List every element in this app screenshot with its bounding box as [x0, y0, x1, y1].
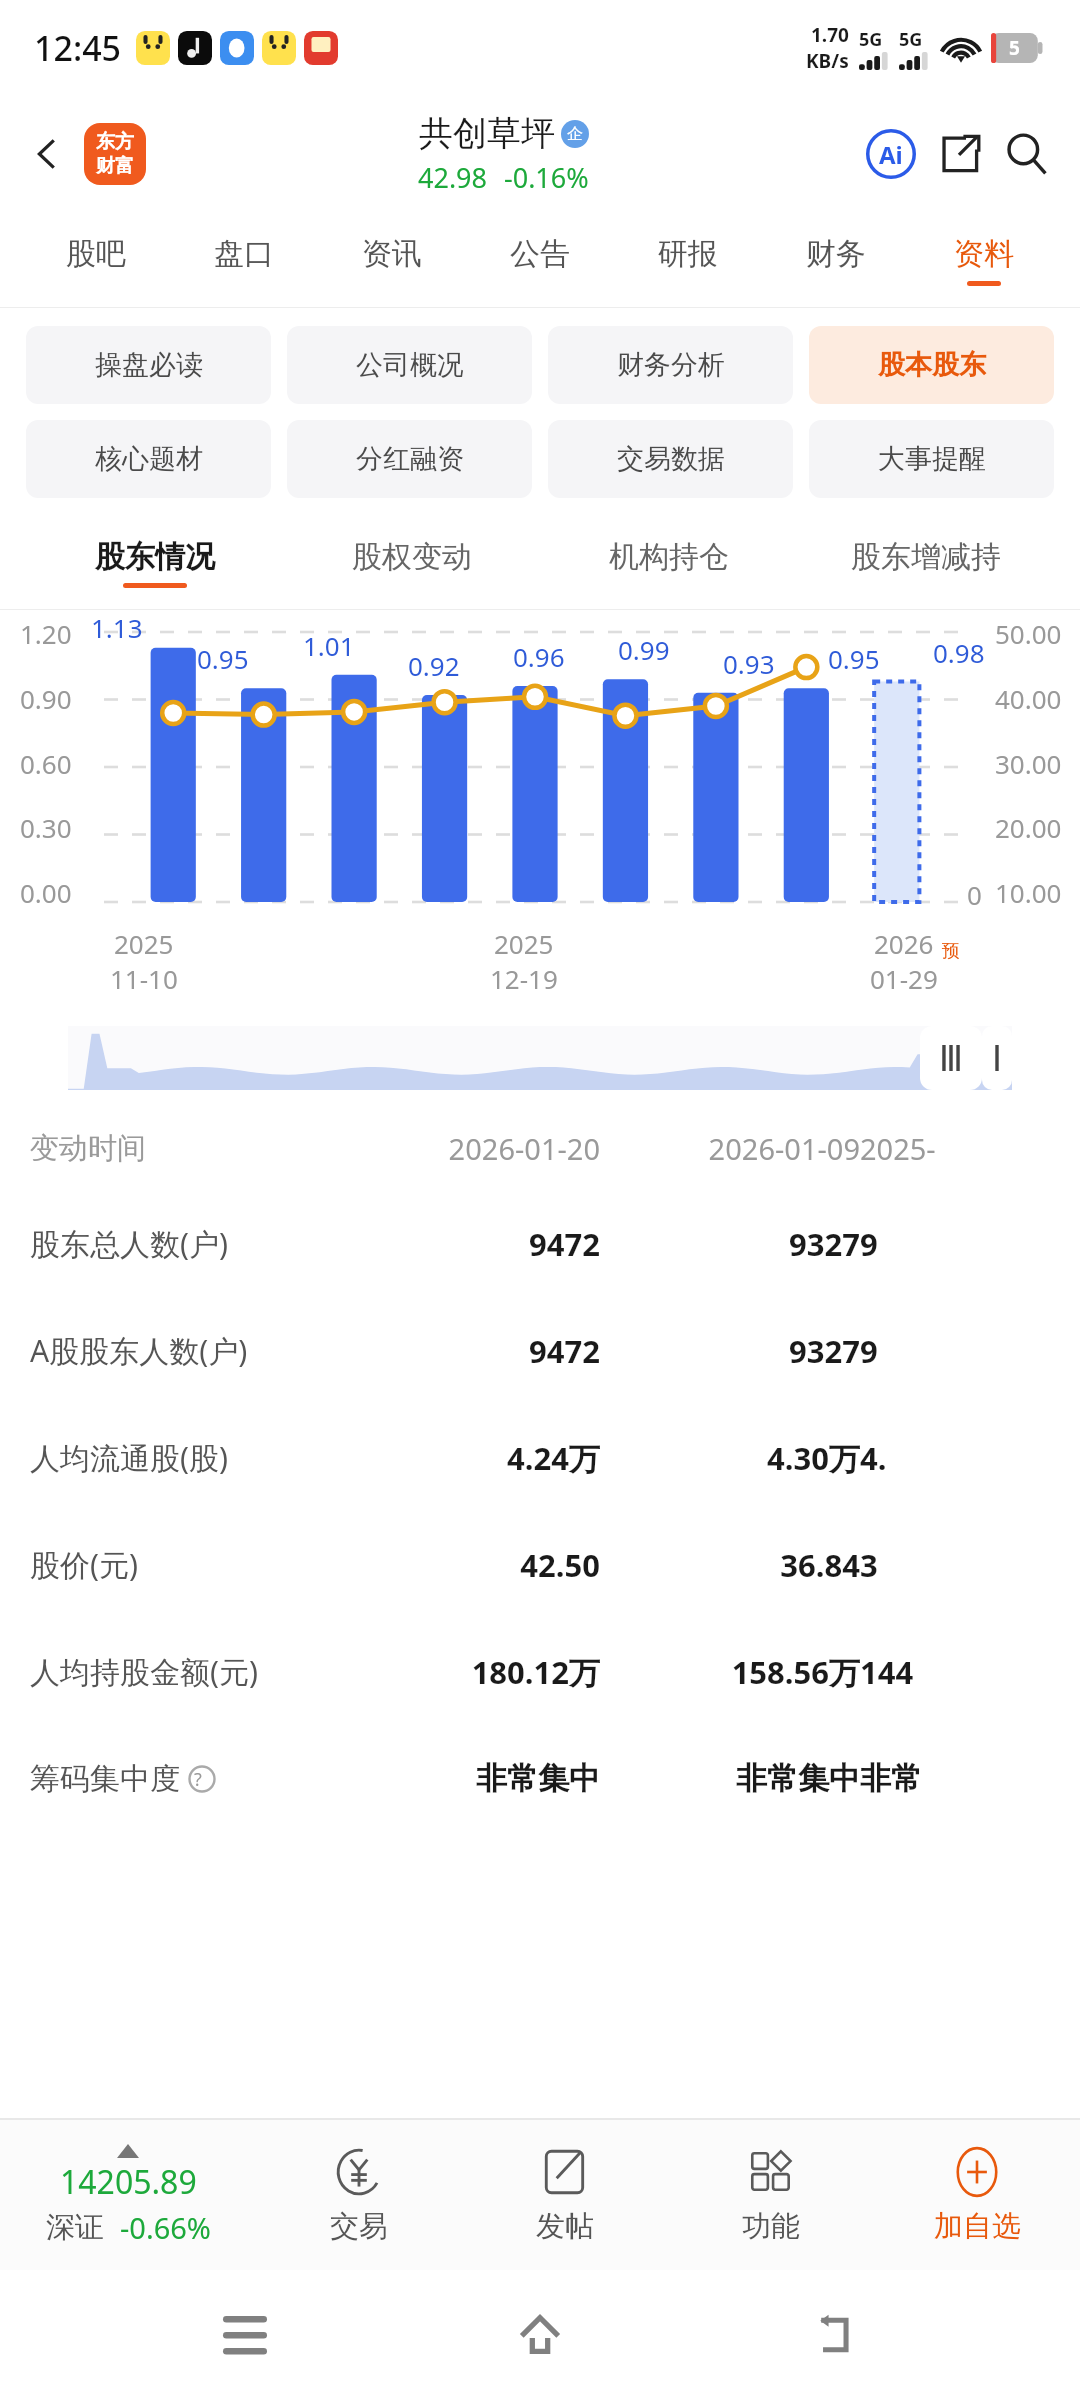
button[interactable]: 盘口 [170, 212, 318, 308]
staticText: Ai [879, 138, 903, 171]
staticText: 9 [860, 1330, 1060, 1372]
button[interactable]: 股吧 [22, 212, 170, 308]
button[interactable]: 14205.89 [0, 2120, 256, 2270]
staticText: 2025 [114, 926, 174, 961]
staticText: -0.66% [120, 2208, 211, 2247]
staticText: 2026-01-09 [600, 1129, 860, 1168]
button[interactable]: 功能 [668, 2120, 874, 2270]
staticText: 42.50 [330, 1544, 600, 1586]
staticText: 人均流通股(股) [30, 1437, 228, 1478]
staticText: 加自选 [934, 2208, 1021, 2245]
button[interactable]: 交易数据 [548, 420, 793, 498]
button[interactable]: 核心题材 [26, 420, 271, 498]
staticText: 分红融资 [356, 442, 464, 476]
button[interactable]: 主页 [490, 2285, 590, 2385]
staticText: 42.98 [418, 159, 488, 196]
button[interactable]: 人均流通股(股) [30, 1404, 1080, 1511]
button[interactable]: 财务分析 [548, 326, 793, 404]
staticText: 1.13 [91, 610, 143, 645]
staticText: 10.00 [995, 875, 1062, 910]
staticText: 4.24万 [330, 1437, 600, 1479]
button[interactable]: 返回 [785, 2285, 885, 2385]
button[interactable]: 股本股东 [809, 326, 1054, 404]
staticText: 交易 [330, 2208, 388, 2245]
staticText: 3 [860, 1544, 1060, 1586]
staticText: 180.12万 [330, 1651, 600, 1693]
staticText: 操盘必读 [95, 348, 203, 382]
button[interactable]: 筹码集中度 [30, 1725, 1080, 1832]
button[interactable]: 人均持股金额(元) [30, 1618, 1080, 1725]
button[interactable]: 研报 [614, 212, 762, 308]
button[interactable]: 公告 [466, 212, 614, 308]
button[interactable]: 最近任务 [195, 2285, 295, 2385]
button[interactable]: 股权变动 [283, 516, 540, 610]
staticText: 盘口 [214, 235, 274, 273]
button[interactable]: 分红融资 [287, 420, 532, 498]
staticText: 0.95 [197, 641, 249, 676]
button[interactable]: 时间范围选择 [68, 1026, 1012, 1090]
button[interactable]: 搜索 [998, 125, 1056, 183]
staticText: 0.99 [618, 632, 670, 667]
staticText: 0.98 [933, 635, 985, 670]
button[interactable]: 机构持仓 [540, 516, 797, 610]
staticText: 12:45 [34, 25, 122, 71]
staticText: 2026-01-20 [330, 1129, 600, 1168]
staticText: 资讯 [362, 235, 422, 273]
staticText: 核心题材 [95, 442, 203, 476]
button[interactable]: A股股东人数(户) [30, 1297, 1080, 1404]
staticText: 9327 [600, 1330, 860, 1372]
button[interactable]: 大事提醒 [809, 420, 1054, 498]
staticText: 50.00 [995, 616, 1062, 651]
staticText: 9472 [330, 1330, 600, 1372]
staticText: 发帖 [536, 2208, 594, 2245]
staticText: 财务分析 [617, 348, 725, 382]
button[interactable]: 股东总人数(户) [30, 1190, 1080, 1297]
staticText: 0.93 [723, 646, 775, 681]
staticText: 36.84 [600, 1544, 860, 1586]
staticText: KB/s [806, 48, 849, 74]
staticText: 变动时间 [30, 1130, 330, 1167]
button[interactable]: 公司概况 [287, 326, 532, 404]
button[interactable]: 操盘必读 [26, 326, 271, 404]
staticText: 20.00 [995, 810, 1062, 845]
staticText: 资料 [954, 235, 1014, 273]
staticText: 功能 [742, 2208, 800, 2245]
staticText: 预 [942, 940, 960, 963]
staticText: 2025- [860, 1129, 1060, 1168]
staticText: 30.00 [995, 746, 1062, 781]
staticText: 财务 [806, 235, 866, 273]
button[interactable]: 股价(元) [30, 1511, 1080, 1618]
staticText: 股东总人数(户) [30, 1223, 228, 1264]
staticText: 0.92 [408, 648, 460, 683]
staticText: 非常集中 [330, 1759, 600, 1798]
staticText: 股价(元) [30, 1544, 138, 1585]
button[interactable]: 股东增减持 [797, 516, 1054, 610]
button[interactable]: 分享 [930, 125, 988, 183]
staticText: 40.00 [995, 681, 1062, 716]
staticText: 0.90 [20, 681, 72, 716]
staticText: 财富 [96, 154, 134, 178]
button[interactable]: 交易 [256, 2120, 462, 2270]
button[interactable]: 返回 [20, 126, 76, 182]
staticText: 5G [899, 27, 923, 52]
staticText: 大事提醒 [878, 442, 986, 476]
staticText: 2025 [494, 926, 554, 961]
button[interactable]: 加自选 [874, 2120, 1080, 2270]
button[interactable]: 财务 [762, 212, 910, 308]
staticText: 股吧 [66, 235, 126, 273]
button[interactable]: 资讯 [318, 212, 466, 308]
button[interactable]: 股东情况 [26, 516, 283, 610]
button[interactable]: 东方财富 [84, 123, 146, 185]
staticText: 非常集中 [600, 1759, 860, 1798]
staticText: 深证 [46, 2209, 104, 2246]
staticText: 股东增减持 [851, 538, 1001, 576]
staticText: 0.30 [20, 810, 72, 845]
staticText: 0.95 [828, 641, 880, 676]
staticText: 1.70 [811, 22, 849, 48]
staticText: 1.01 [303, 628, 355, 663]
button[interactable]: 发帖 [462, 2120, 668, 2270]
button[interactable]: 资料 [910, 212, 1058, 308]
staticText: 1.20 [20, 616, 72, 651]
staticText: 机构持仓 [609, 538, 729, 576]
button[interactable]: AI [862, 125, 920, 183]
